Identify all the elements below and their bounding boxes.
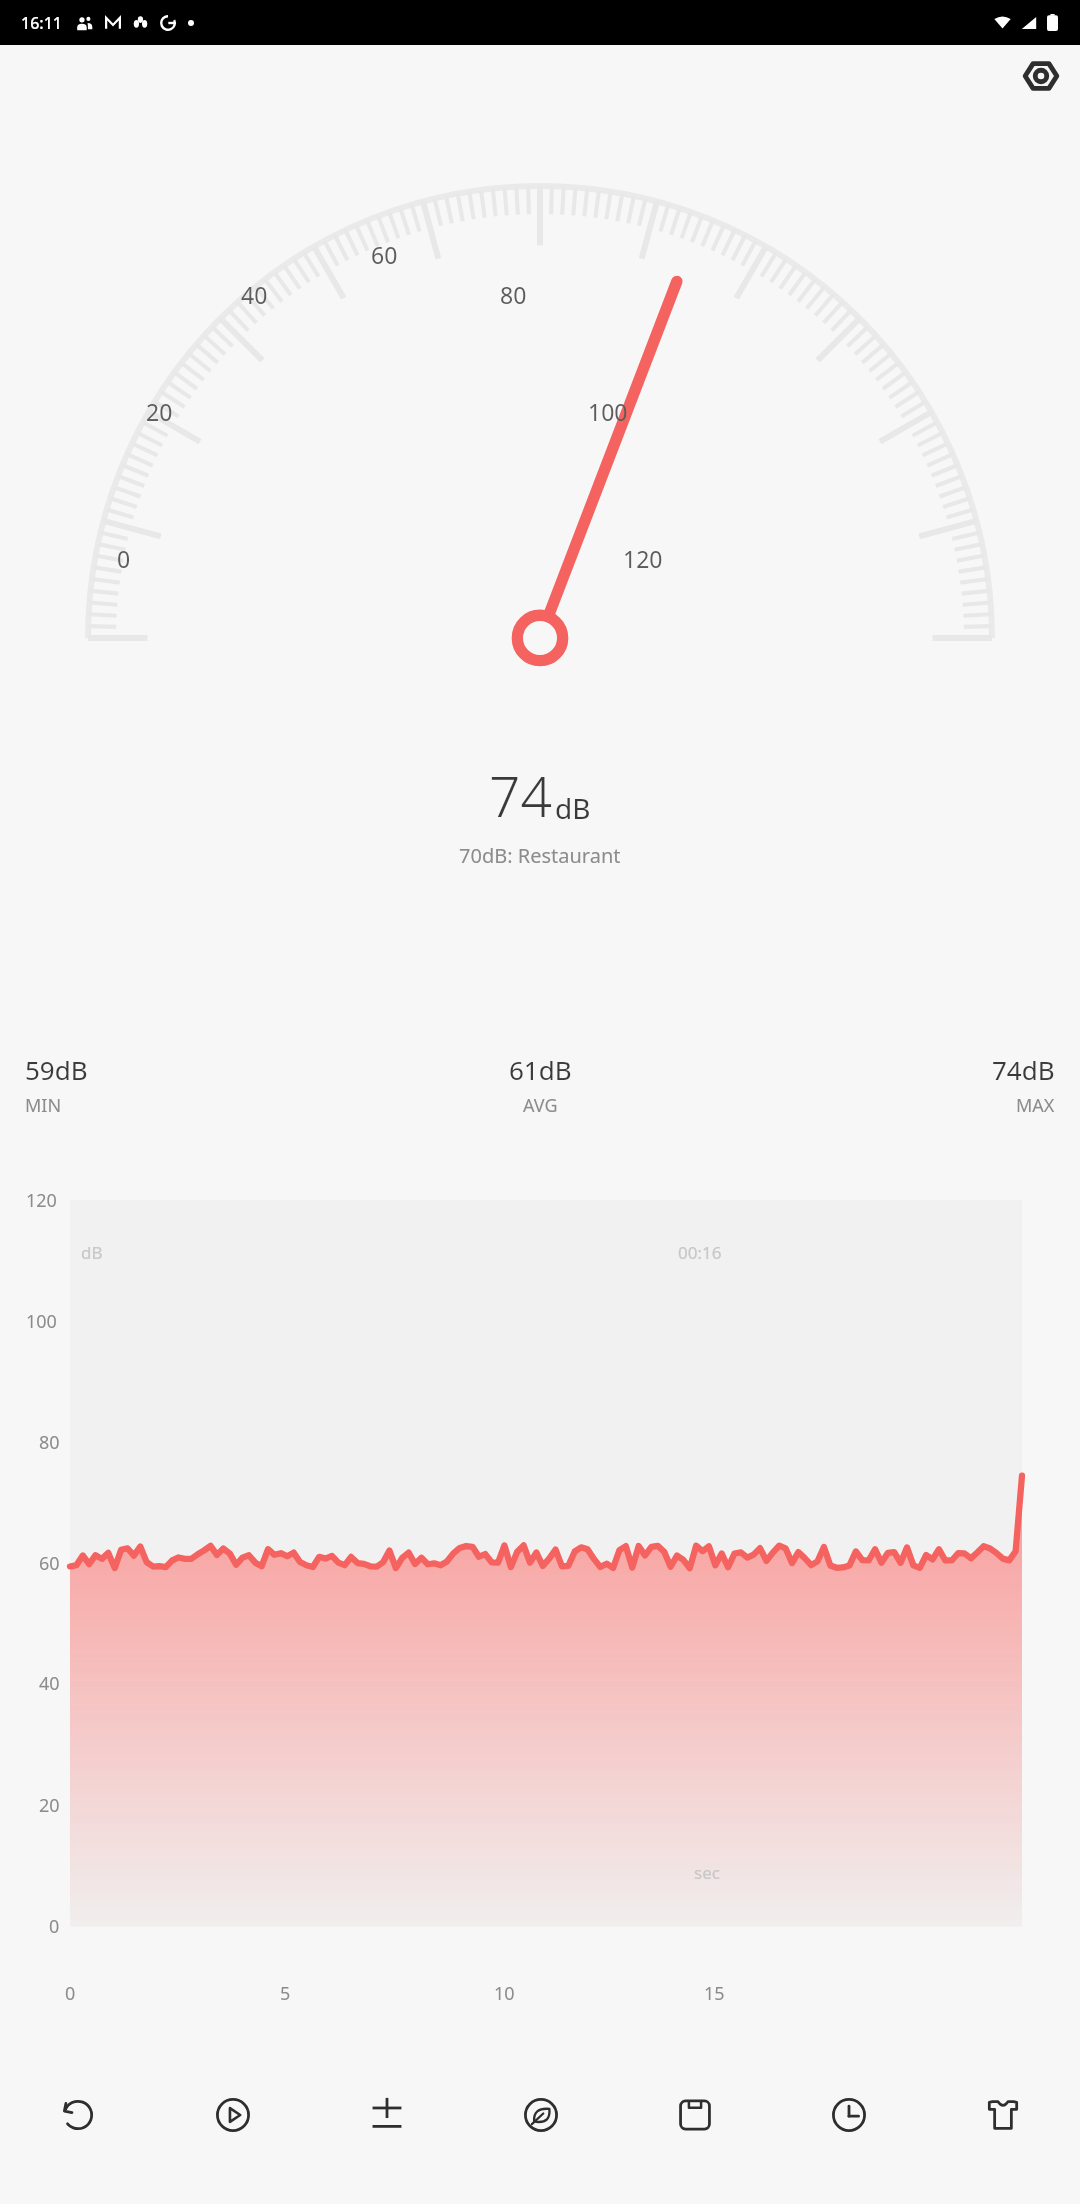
staticText: 0 [65,1981,76,2006]
staticText: 40 [39,1671,60,1696]
staticText: 120 [26,1188,57,1213]
staticText: 74 [489,758,552,833]
staticText: sec [694,1861,720,1884]
staticText: 16:11 [21,12,62,34]
staticText: 100 [588,396,628,427]
staticText: 10 [494,1981,515,2006]
staticText: MAX [1016,1093,1055,1118]
staticText: 74dB [992,1052,1055,1087]
button[interactable]: Save [618,2025,772,2204]
staticText: 00:16 [678,1241,722,1264]
staticText: 0 [49,1914,60,1939]
button[interactable]: Calibrate [310,2025,464,2204]
button[interactable]: Settings [1016,51,1066,101]
staticText: dB [555,789,591,827]
button[interactable]: Theme [926,2025,1080,2204]
button[interactable]: Start [155,2025,310,2204]
button[interactable]: History [772,2025,926,2204]
staticText: 120 [623,543,663,574]
staticText: 100 [26,1309,57,1334]
staticText: 70dB: Restaurant [459,842,621,869]
staticText: 59dB [25,1052,88,1087]
staticText: 80 [39,1430,60,1455]
staticText: AVG [523,1093,558,1118]
staticText: MIN [25,1093,62,1118]
staticText: 5 [280,1981,291,2006]
staticText: 20 [39,1793,60,1818]
button[interactable]: Reset [0,2025,155,2204]
staticText: 20 [146,396,173,427]
staticText: dB [81,1241,103,1264]
staticText: 15 [704,1981,725,2006]
staticText: 40 [241,279,268,310]
staticText: 0 [117,543,131,574]
staticText: 80 [500,279,527,310]
staticText: 60 [39,1551,60,1576]
staticText: 60 [371,239,398,270]
button[interactable]: Noise profile [464,2025,618,2204]
staticText: 61dB [509,1052,572,1087]
